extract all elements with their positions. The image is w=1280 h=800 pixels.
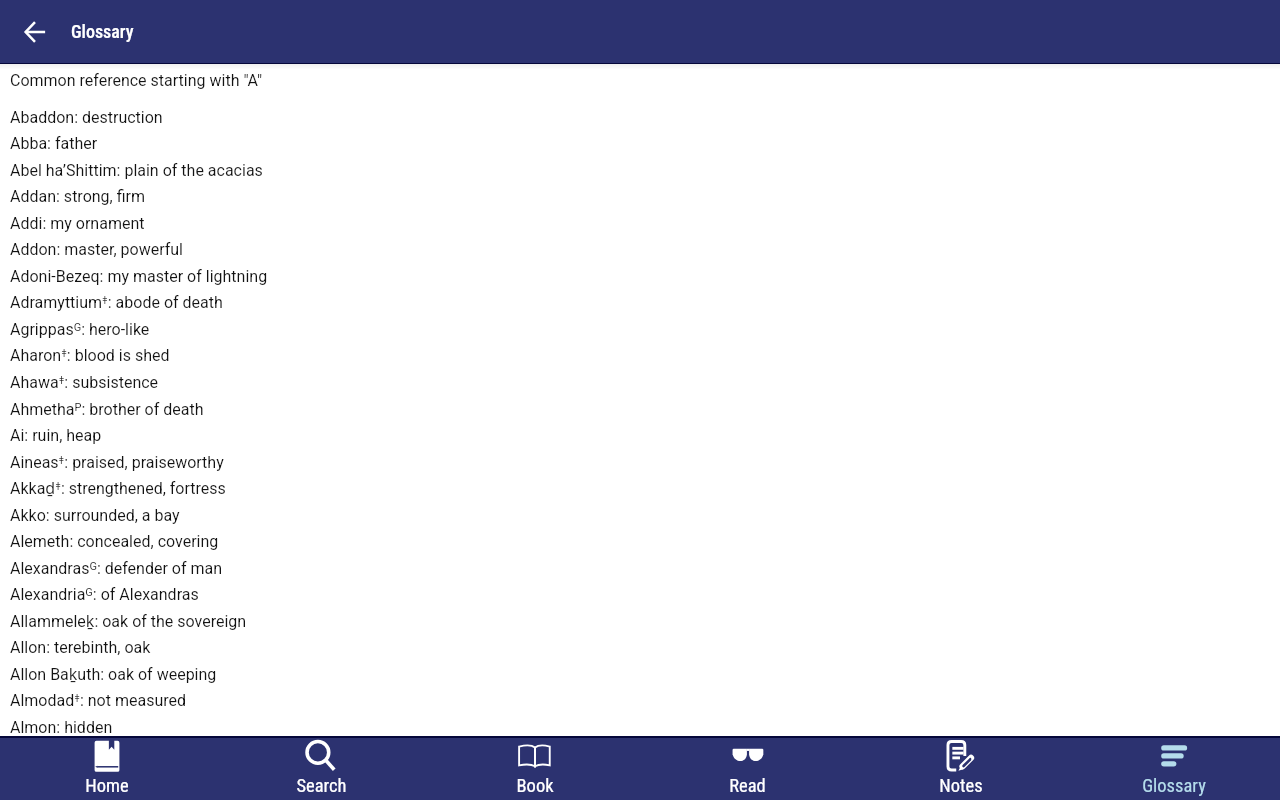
staticText: Home: [85, 775, 129, 797]
button[interactable]: Read: [641, 736, 854, 800]
button[interactable]: Search: [214, 736, 428, 800]
staticText: Almon: hidden: [10, 718, 113, 737]
button[interactable]: Aineasǂ: praised, praiseworthy: [0, 449, 1280, 475]
button[interactable]: Ahawaǂ: subsistence: [0, 369, 1280, 395]
staticText: Notes: [939, 775, 983, 797]
button[interactable]: AlexandrasG: defender of man: [0, 555, 1280, 581]
staticText: Alemeth: concealed, covering: [10, 532, 219, 551]
button[interactable]: Akkaḏǂ: strengthened, fortress: [0, 475, 1280, 501]
staticText: Addi: my ornament: [10, 214, 145, 233]
staticText: Abel ha’Shittim: plain of the acacias: [10, 161, 263, 180]
button[interactable]: Allon: terebinth, oak: [0, 634, 1280, 660]
button[interactable]: Ai: ruin, heap: [0, 422, 1280, 448]
staticText: AlexandrasG: defender of man: [10, 559, 223, 578]
staticText: Ai: ruin, heap: [10, 426, 102, 445]
button[interactable]: Allammeleḵ: oak of the sovereign: [0, 608, 1280, 634]
button[interactable]: Alemeth: concealed, covering: [0, 528, 1280, 554]
staticText: AgrippasG: hero-like: [10, 320, 150, 339]
staticText: Almodadǂ: not measured: [10, 690, 186, 710]
staticText: Addan: strong, firm: [10, 187, 146, 206]
button[interactable]: AhmethaP: brother of death: [0, 396, 1280, 422]
staticText: Abba: father: [10, 134, 98, 153]
staticText: Addon: master, powerful: [10, 240, 184, 259]
button[interactable]: Glossary: [1067, 736, 1280, 800]
staticText: Glossary: [1142, 775, 1206, 797]
button[interactable]: Addi: my ornament: [0, 210, 1280, 236]
staticText: Akkaḏǂ: strengthened, fortress: [10, 477, 226, 499]
staticText: Allon Baḵuth: oak of weeping: [10, 663, 217, 685]
staticText: Aineasǂ: praised, praiseworthy: [10, 452, 224, 472]
staticText: Book: [516, 775, 554, 797]
button[interactable]: Back: [15, 12, 55, 52]
button[interactable]: AlexandriaG: of Alexandras: [0, 581, 1280, 607]
button[interactable]: Addon: master, powerful: [0, 236, 1280, 262]
button[interactable]: Adramyttiumǂ: abode of death: [0, 289, 1280, 315]
button[interactable]: Akko: surrounded, a bay: [0, 502, 1280, 528]
staticText: AhmethaP: brother of death: [10, 400, 204, 419]
staticText: Search: [296, 775, 347, 797]
button[interactable]: Almodadǂ: not measured: [0, 687, 1280, 713]
button[interactable]: Abel ha’Shittim: plain of the acacias: [0, 157, 1280, 183]
staticText: Ahawaǂ: subsistence: [10, 372, 159, 392]
button[interactable]: Abba: father: [0, 130, 1280, 156]
staticText: Aharonǂ: blood is shed: [10, 345, 170, 365]
button[interactable]: Adoni-Bezeq: my master of lightning: [0, 263, 1280, 289]
button[interactable]: Home: [0, 736, 214, 800]
button[interactable]: Notes: [854, 736, 1067, 800]
staticText: Common reference starting with "A": [10, 71, 263, 90]
button[interactable]: Aharonǂ: blood is shed: [0, 342, 1280, 368]
staticText: Akko: surrounded, a bay: [10, 506, 180, 525]
button[interactable]: Addan: strong, firm: [0, 183, 1280, 209]
button[interactable]: Book: [428, 736, 641, 800]
staticText: Adramyttiumǂ: abode of death: [10, 292, 223, 312]
staticText: Allammeleḵ: oak of the sovereign: [10, 610, 247, 632]
staticText: Abaddon: destruction: [10, 108, 163, 127]
button[interactable]: AgrippasG: hero-like: [0, 316, 1280, 342]
button[interactable]: Almon: hidden: [0, 714, 1280, 740]
staticText: Allon: terebinth, oak: [10, 638, 151, 657]
staticText: AlexandriaG: of Alexandras: [10, 585, 199, 604]
staticText: Glossary: [71, 21, 134, 42]
button[interactable]: Abaddon: destruction: [0, 104, 1280, 130]
staticText: Adoni-Bezeq: my master of lightning: [10, 267, 268, 286]
button[interactable]: Allon Baḵuth: oak of weeping: [0, 661, 1280, 687]
staticText: Read: [729, 775, 766, 797]
